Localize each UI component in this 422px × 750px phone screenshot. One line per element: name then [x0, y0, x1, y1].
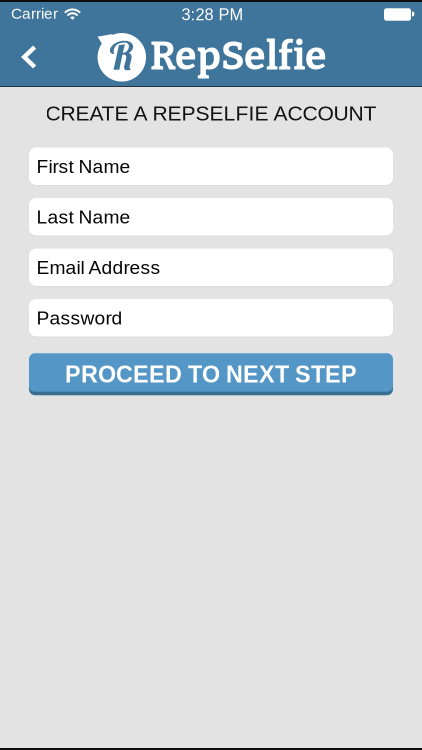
staticText: 3:28 PM	[181, 5, 243, 24]
staticText: Password	[36, 307, 122, 329]
button[interactable]: Password	[29, 299, 393, 336]
button[interactable]: First Name	[29, 147, 393, 185]
staticText: PROCEED TO NEXT STEP	[65, 361, 357, 388]
staticText: R	[110, 30, 134, 80]
button[interactable]: PROCEED TO NEXT STEP	[27, 351, 395, 396]
button[interactable]: Email Address	[29, 248, 393, 286]
staticText: Last Name	[36, 206, 130, 228]
staticText: RepSelfie	[150, 33, 327, 80]
staticText: Email Address	[36, 257, 160, 278]
button[interactable]: Last Name	[29, 198, 393, 235]
button[interactable]: Back	[14, 38, 44, 76]
staticText: CREATE A REPSELFIE ACCOUNT	[45, 101, 376, 125]
staticText: Carrier	[11, 5, 58, 22]
staticText: First Name	[36, 156, 130, 177]
